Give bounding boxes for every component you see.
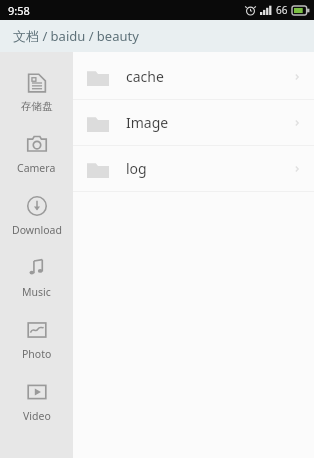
other: Open Image [292, 118, 302, 128]
staticText: Music [22, 285, 51, 299]
staticText: 文档 / baidu / beauty [13, 27, 139, 45]
staticText: 9:58 [8, 3, 30, 18]
button[interactable]: Video [0, 371, 73, 433]
button[interactable]: 存储盘 [0, 61, 73, 123]
staticText: Video [23, 409, 51, 423]
staticText: Download [12, 223, 62, 237]
button[interactable]: Download [0, 185, 73, 247]
staticText: cache [126, 67, 292, 86]
other: Open log [292, 164, 302, 174]
staticText: Camera [17, 161, 56, 175]
staticText: Image [126, 113, 292, 132]
staticText: 存储盘 [21, 100, 53, 113]
button[interactable]: Photo [0, 309, 73, 371]
button[interactable]: Music [0, 247, 73, 309]
button[interactable]: Image [73, 100, 314, 146]
button[interactable]: cache [73, 54, 314, 100]
staticText: log [126, 159, 292, 178]
button[interactable]: 文档 / baidu / beauty [0, 20, 314, 52]
staticText: Photo [22, 347, 52, 361]
button[interactable]: Camera [0, 123, 73, 185]
staticText: 66 [276, 3, 288, 17]
button[interactable]: log [73, 146, 314, 192]
other: Open cache [292, 72, 302, 82]
